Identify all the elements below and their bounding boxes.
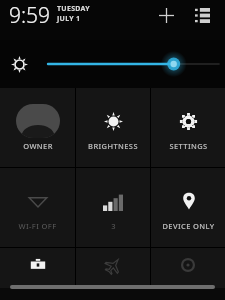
staticText: WI-FI OFF [18, 221, 57, 231]
button[interactable]: Add user [151, 0, 181, 30]
staticText: TUESDAY [57, 4, 90, 14]
button[interactable]: SETTINGS [151, 88, 225, 167]
button[interactable]: BRIGHTNESS [76, 88, 150, 167]
other: Auto brightness [7, 52, 31, 76]
button[interactable]: Quick settings list [187, 0, 217, 30]
staticText: OWNER [23, 141, 53, 151]
button[interactable]: WI-FI OFF [0, 168, 75, 247]
button[interactable] [10, 285, 215, 289]
button[interactable]: DEVICE ONLY [151, 168, 225, 247]
button[interactable]: 3 [76, 168, 150, 247]
button[interactable]: Auto brightness [0, 40, 225, 88]
staticText: JULY 1 [57, 14, 81, 24]
button[interactable]: Work mode [0, 248, 75, 288]
button[interactable]: Cast screen [151, 248, 225, 288]
staticText: 3 [111, 221, 116, 231]
staticText: 9:59 [9, 1, 51, 30]
staticText: DEVICE ONLY [162, 221, 215, 231]
staticText: BRIGHTNESS [88, 141, 138, 151]
button[interactable]: OWNER [0, 88, 75, 167]
staticText: SETTINGS [169, 141, 208, 151]
button[interactable]: Airplane mode [76, 248, 150, 288]
